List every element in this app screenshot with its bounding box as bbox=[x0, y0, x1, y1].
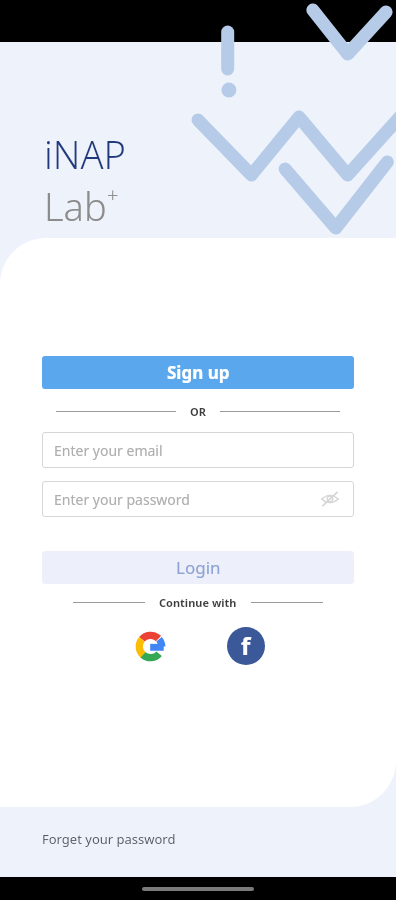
staticText: iNAP bbox=[44, 128, 127, 180]
button[interactable]: Enter your email bbox=[42, 432, 354, 468]
button[interactable]: Sign in with Google bbox=[128, 624, 172, 668]
staticText: Enter your email bbox=[54, 441, 163, 460]
staticText: OR bbox=[190, 404, 206, 419]
staticText: Forget your password bbox=[42, 830, 176, 848]
staticText: f bbox=[241, 629, 251, 662]
staticText: + bbox=[107, 181, 119, 208]
staticText: Sign up bbox=[167, 361, 230, 384]
button[interactable]: Enter your password bbox=[42, 481, 354, 517]
button[interactable]: Login bbox=[42, 551, 354, 584]
staticText: Continue with bbox=[159, 595, 237, 610]
button[interactable]: Forget your password bbox=[40, 826, 178, 852]
button[interactable]: Sign in with Facebook bbox=[224, 624, 268, 668]
staticText: Login bbox=[176, 556, 221, 579]
button[interactable]: Toggle password visibility bbox=[318, 487, 342, 511]
staticText: Enter your password bbox=[54, 490, 190, 509]
staticText: Lab bbox=[44, 180, 107, 232]
button[interactable]: Sign up bbox=[42, 356, 354, 389]
